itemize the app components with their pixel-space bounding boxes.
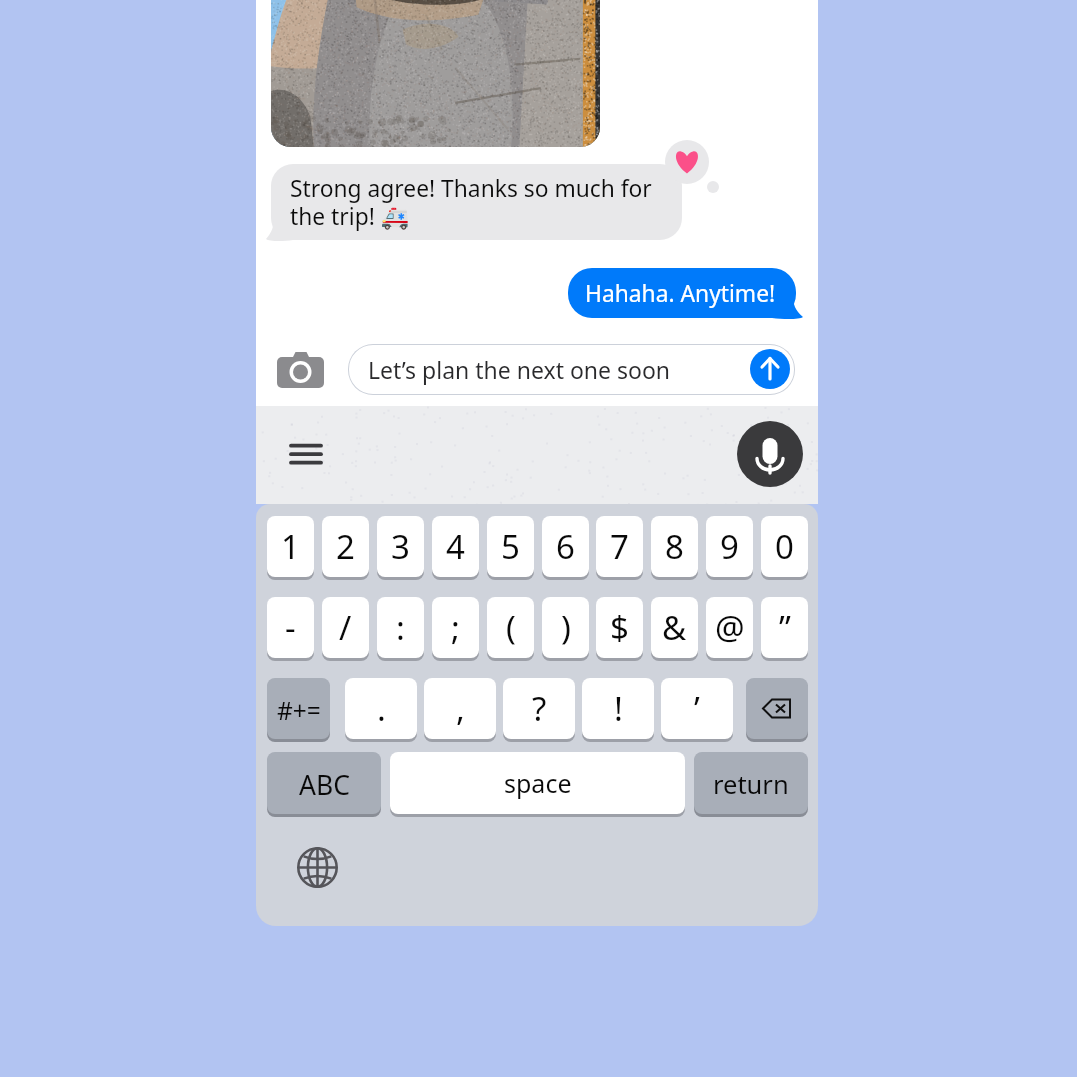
staticText: ”	[779, 605, 791, 650]
button[interactable]: Let’s plan the next one soon	[348, 344, 795, 395]
staticText: Let’s plan the next one soon	[368, 354, 671, 385]
button[interactable]: Change keyboard	[297, 847, 338, 888]
staticText: &	[662, 605, 687, 650]
staticText: 0	[775, 524, 794, 569]
button[interactable]: 3	[377, 516, 424, 579]
button[interactable]: )	[542, 597, 589, 660]
staticText: ABC	[299, 767, 350, 803]
button[interactable]: Send	[750, 349, 790, 389]
staticText: 9	[720, 524, 739, 569]
button[interactable]: Menu	[280, 430, 332, 482]
staticText: /	[339, 605, 352, 650]
button[interactable]: -	[267, 597, 314, 660]
staticText: 7	[610, 524, 629, 569]
button[interactable]: 2	[322, 516, 369, 579]
button[interactable]: Photo attachment	[271, 0, 600, 147]
button[interactable]: Delete	[746, 678, 808, 741]
button[interactable]: ABC	[267, 752, 381, 816]
button[interactable]: return	[694, 752, 808, 816]
staticText: Strong agree! Thanks so much for the tri…	[290, 173, 652, 232]
button[interactable]: Camera	[275, 346, 323, 394]
staticText: !	[614, 686, 623, 731]
staticText: 8	[665, 524, 684, 569]
button[interactable]: (	[487, 597, 534, 660]
button[interactable]: 8	[651, 516, 698, 579]
button[interactable]: 1	[267, 516, 314, 579]
button[interactable]: 6	[542, 516, 589, 579]
staticText: Hahaha. Anytime!	[585, 278, 776, 309]
button[interactable]: space	[390, 752, 685, 816]
staticText: ,	[456, 686, 465, 731]
staticText: #+=	[277, 694, 321, 727]
staticText: ’	[694, 686, 700, 731]
button[interactable]: :	[377, 597, 424, 660]
button[interactable]: Heart reaction	[661, 140, 731, 200]
staticText: ;	[451, 605, 460, 650]
staticText: )	[561, 605, 571, 650]
button[interactable]: .	[345, 678, 417, 741]
staticText: .	[377, 686, 386, 731]
button[interactable]: Voice input	[737, 421, 803, 487]
staticText: 5	[501, 524, 520, 569]
staticText: ?	[532, 686, 547, 731]
staticText: 1	[281, 524, 300, 569]
button[interactable]: Strong agree! Thanks so much for the tri…	[271, 164, 682, 240]
staticText: @	[715, 605, 745, 650]
staticText: 6	[556, 524, 575, 569]
button[interactable]: 4	[432, 516, 479, 579]
button[interactable]: ”	[761, 597, 808, 660]
staticText: return	[713, 767, 789, 802]
button[interactable]: 5	[487, 516, 534, 579]
button[interactable]: ,	[424, 678, 496, 741]
staticText: 3	[391, 524, 410, 569]
button[interactable]: 9	[706, 516, 753, 579]
button[interactable]: #+=	[267, 678, 330, 741]
staticText: (	[506, 605, 516, 650]
staticText: -	[285, 605, 296, 650]
button[interactable]: !	[582, 678, 654, 741]
button[interactable]: @	[706, 597, 753, 660]
button[interactable]: ’	[661, 678, 733, 741]
button[interactable]: ;	[432, 597, 479, 660]
button[interactable]: &	[651, 597, 698, 660]
staticText: 4	[446, 524, 465, 569]
button[interactable]: /	[322, 597, 369, 660]
button[interactable]: 7	[596, 516, 643, 579]
button[interactable]: ?	[503, 678, 575, 741]
staticText: $	[610, 605, 629, 650]
staticText: 2	[336, 524, 355, 569]
button[interactable]: Hahaha. Anytime!	[568, 268, 803, 318]
staticText: space	[504, 766, 572, 800]
button[interactable]: $	[596, 597, 643, 660]
button[interactable]: 0	[761, 516, 808, 579]
staticText: :	[396, 605, 405, 650]
